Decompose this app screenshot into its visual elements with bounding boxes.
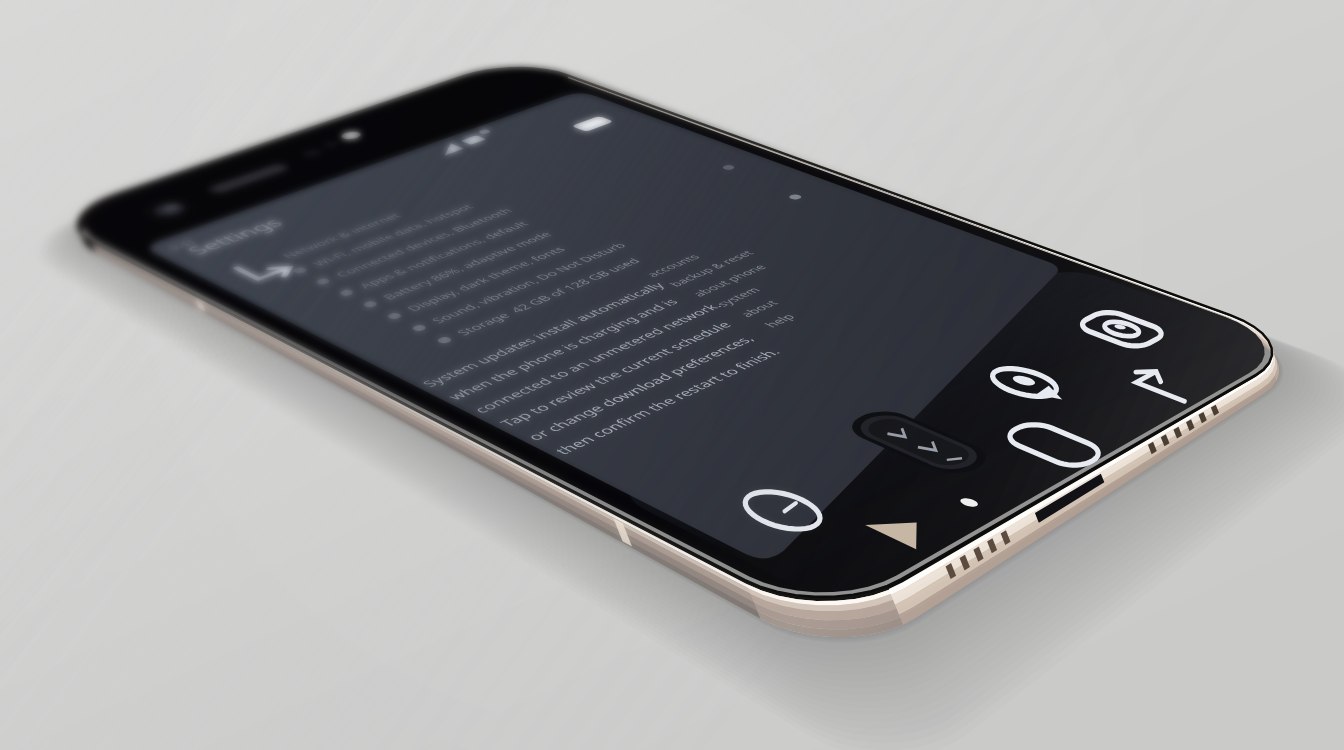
button[interactable]: Settings list [225,116,834,364]
button[interactable]: Camera [1074,309,1169,350]
button[interactable]: Back [1121,366,1206,403]
button[interactable]: Settings [154,188,356,264]
button[interactable]: Clock [729,484,836,538]
button[interactable]: System update details [407,202,1004,471]
button[interactable]: Smartphone displaying a dark settings sc… [0,0,1344,750]
button[interactable]: Fingerprint sensor [839,406,999,480]
button[interactable]: Home [1000,420,1108,470]
button[interactable]: Back [218,253,302,289]
button[interactable]: Messages [975,360,1075,405]
